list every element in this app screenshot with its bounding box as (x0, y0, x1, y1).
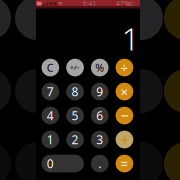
button[interactable]: 2 (66, 131, 84, 148)
staticText: 9 (96, 84, 103, 99)
button[interactable]: C (41, 59, 59, 76)
button[interactable]: 5 (66, 107, 84, 124)
staticText: 8 (71, 84, 78, 99)
button[interactable]: = (116, 155, 133, 172)
staticText: 3 (96, 132, 103, 147)
staticText: 7 (47, 84, 54, 99)
staticText: 1 (121, 17, 139, 59)
staticText: 2 (71, 132, 78, 147)
button[interactable]: 9 (91, 83, 109, 100)
staticText: 9:41 (82, 0, 96, 8)
button[interactable]: 4 (41, 107, 59, 124)
staticText: = (120, 155, 128, 172)
staticText: C (47, 60, 54, 75)
staticText: 1 (47, 132, 54, 147)
staticText: . (98, 156, 101, 171)
button[interactable]: 0 (41, 155, 84, 172)
button[interactable]: 8 (66, 83, 84, 100)
staticText: − (120, 106, 128, 125)
button[interactable]: 7 (41, 83, 59, 100)
button[interactable]: 3 (91, 131, 109, 148)
button[interactable]: × (116, 83, 133, 100)
button[interactable]: +/− (66, 59, 84, 76)
staticText: 47% (116, 0, 130, 8)
button[interactable]: 1 (41, 131, 59, 148)
button[interactable]: 6 (91, 107, 109, 124)
staticText: × (120, 83, 128, 100)
button[interactable]: % (91, 59, 109, 76)
button[interactable]: + (116, 131, 133, 148)
staticText: % (95, 60, 104, 75)
staticText: + (120, 130, 128, 149)
button[interactable]: . (91, 155, 109, 172)
staticText: 4 (47, 108, 54, 123)
button[interactable]: − (116, 107, 133, 124)
staticText: 5 (71, 108, 78, 123)
button[interactable]: ÷ (116, 59, 133, 76)
staticText: 6 (96, 108, 103, 123)
staticText: ÷ (120, 59, 128, 76)
staticText: 0 (47, 156, 54, 171)
staticText: +/− (70, 63, 80, 72)
